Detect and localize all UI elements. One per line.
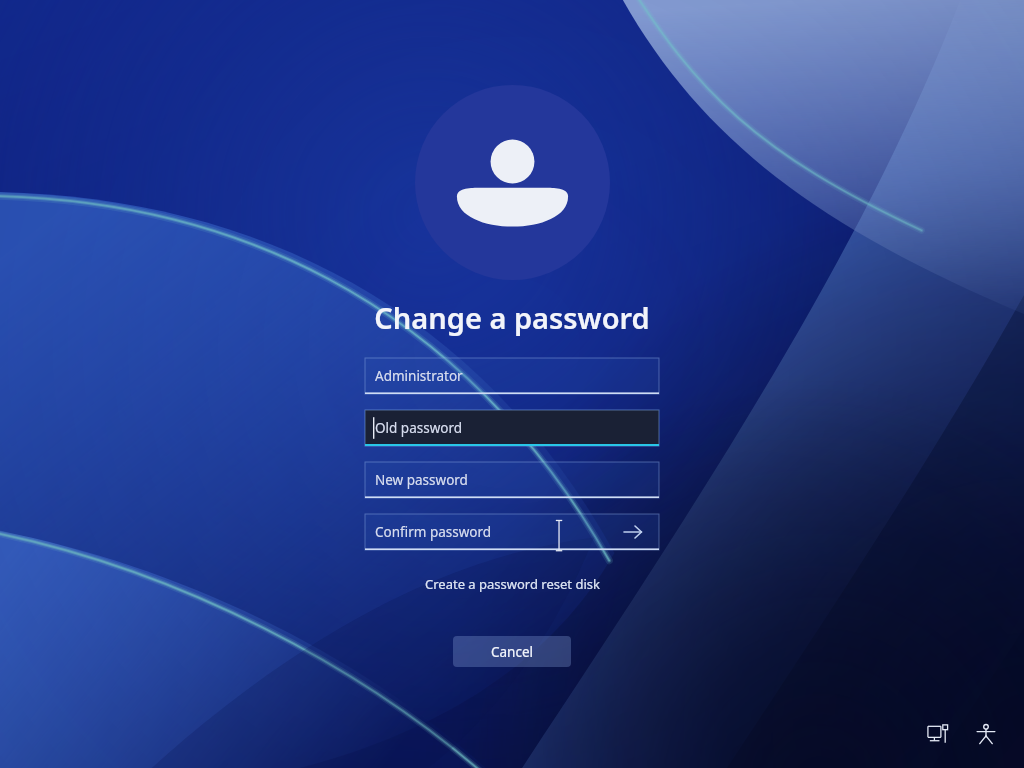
staticText: Old password [375, 419, 463, 437]
staticText: Change a password [374, 298, 650, 337]
button[interactable]: Accessibility [966, 714, 1006, 754]
button[interactable]: Confirm password [365, 514, 659, 550]
button[interactable]: Network [918, 714, 958, 754]
button[interactable]: New password [365, 462, 659, 498]
staticText: Create a password reset disk [425, 575, 600, 593]
button[interactable]: Cancel [453, 636, 571, 667]
staticText: Confirm password [375, 523, 492, 541]
staticText: New password [375, 471, 468, 489]
button[interactable]: Administrator [365, 358, 659, 394]
staticText: Administrator [375, 367, 463, 385]
button[interactable]: Old password [365, 410, 659, 446]
staticText: Cancel [491, 643, 534, 661]
button[interactable]: Create a password reset disk [419, 572, 606, 596]
